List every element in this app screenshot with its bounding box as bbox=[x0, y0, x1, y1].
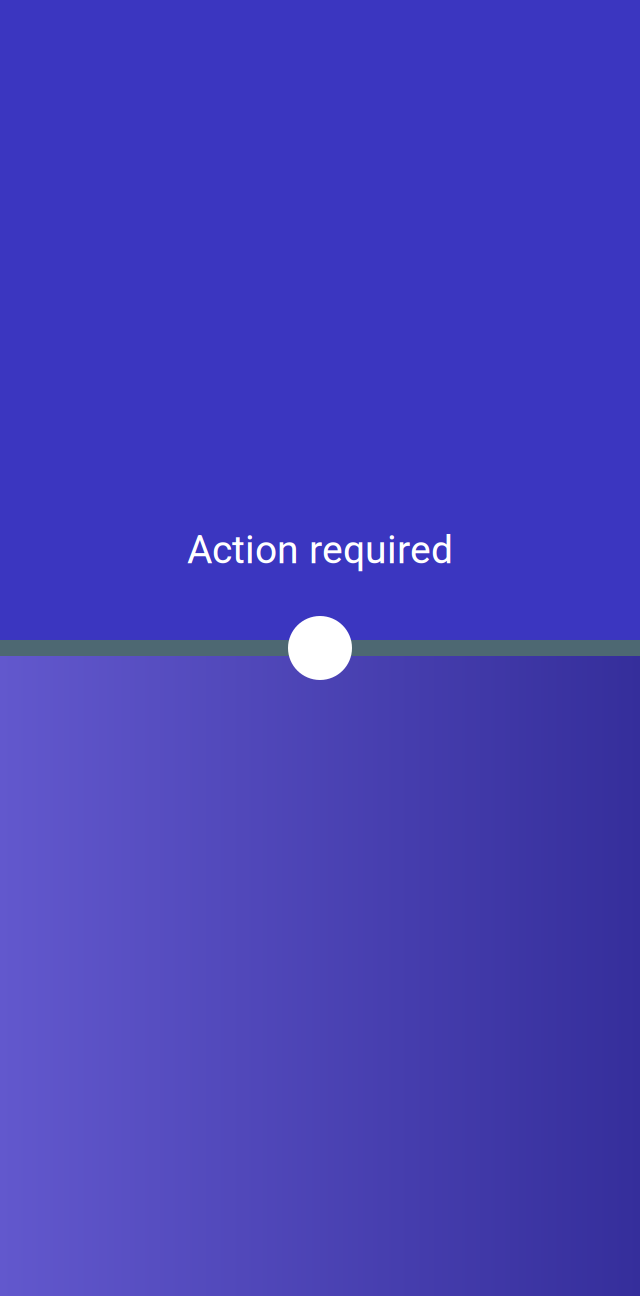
staticText: Action required bbox=[187, 527, 453, 573]
button[interactable]: Drag handle bbox=[288, 616, 352, 680]
